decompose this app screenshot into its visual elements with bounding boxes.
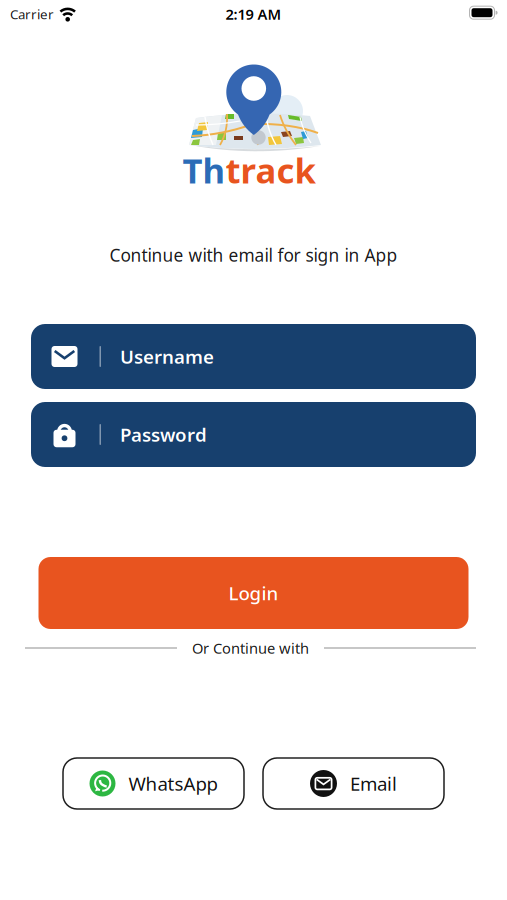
staticText: Th [182,147,225,193]
staticText: WhatsApp [128,771,217,796]
button[interactable]: WhatsApp [63,758,244,809]
button[interactable]: Login [38,557,468,629]
staticText: Carrier [10,5,54,23]
staticText: track [225,147,315,193]
staticText: 2:19 AM [225,4,281,24]
staticText: Continue with email for sign in App [109,243,397,266]
staticText: Email [350,771,397,796]
button[interactable]: Password [31,402,476,467]
staticText: Password [120,422,207,447]
staticText: Username [120,344,214,369]
button[interactable]: Email [263,758,444,809]
button[interactable]: Username [31,324,476,389]
staticText: Login [228,581,278,605]
staticText: Or Continue with [192,638,309,658]
